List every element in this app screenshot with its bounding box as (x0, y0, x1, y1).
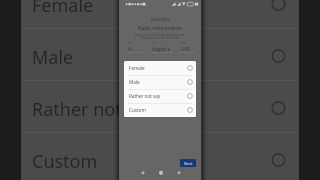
button[interactable]: Rather not say (21, 82, 299, 134)
staticText: Enter your birthday and gender. Why we a… (119, 32, 201, 40)
staticText: Male (32, 45, 74, 70)
staticText: Rather not say (32, 97, 155, 122)
staticText: Google (119, 15, 201, 22)
button[interactable]: Female (124, 61, 196, 75)
button[interactable]: 14 (127, 46, 133, 52)
staticText: Custom (129, 107, 146, 113)
staticText: Rather not say (129, 93, 161, 99)
button[interactable]: Male (124, 75, 196, 89)
button[interactable]: Custom (124, 103, 196, 117)
staticText: Basic information (119, 24, 201, 31)
staticText: Female (32, 0, 94, 18)
button[interactable]: August ▾ (152, 46, 170, 52)
button[interactable]: Female (21, 0, 299, 30)
staticText: Day (127, 41, 133, 45)
other: Navigation bar (119, 167, 201, 180)
button[interactable]: Rather not say (124, 89, 196, 103)
staticText: Next (184, 161, 193, 166)
staticText: Female (129, 65, 145, 71)
button[interactable]: Next (180, 159, 196, 167)
staticText: Custom (32, 149, 98, 174)
staticText: Year (180, 41, 187, 45)
staticText: Month (152, 41, 162, 45)
button[interactable]: Custom (21, 134, 299, 180)
button[interactable]: 1990 (180, 46, 191, 52)
button[interactable]: Male (21, 30, 299, 82)
staticText: Male (129, 79, 140, 85)
